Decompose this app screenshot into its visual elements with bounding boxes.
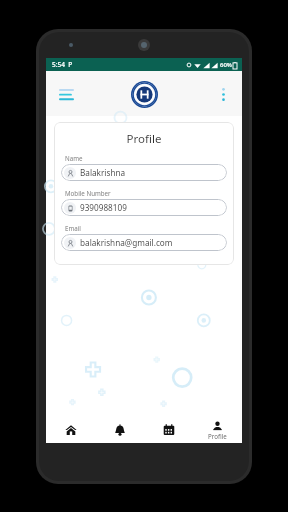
button[interactable]: Hospital logo xyxy=(129,79,159,109)
button[interactable]: Calendar xyxy=(144,417,193,443)
staticText: Profile xyxy=(208,432,227,440)
staticText: Balakrishna xyxy=(80,167,126,178)
staticText: Email xyxy=(65,224,81,232)
staticText: balakrishna@gmail.com xyxy=(80,237,173,248)
button[interactable]: Home xyxy=(46,417,95,443)
button[interactable]: Profile xyxy=(193,417,242,443)
button[interactable]: Menu xyxy=(54,82,78,106)
button[interactable]: Balakrishna xyxy=(61,164,227,181)
staticText: Mobile Number xyxy=(65,189,111,197)
button[interactable]: Notifications xyxy=(95,417,144,443)
staticText: Name xyxy=(65,154,83,162)
staticText: 60% xyxy=(220,61,232,69)
button[interactable]: More options xyxy=(212,83,234,105)
button[interactable]: balakrishna@gmail.com xyxy=(61,234,227,251)
button[interactable]: 9390988109 xyxy=(61,199,227,216)
staticText: 9390988109 xyxy=(80,202,127,213)
staticText: Profile xyxy=(61,131,227,147)
staticText: 5:54 P xyxy=(52,60,73,69)
